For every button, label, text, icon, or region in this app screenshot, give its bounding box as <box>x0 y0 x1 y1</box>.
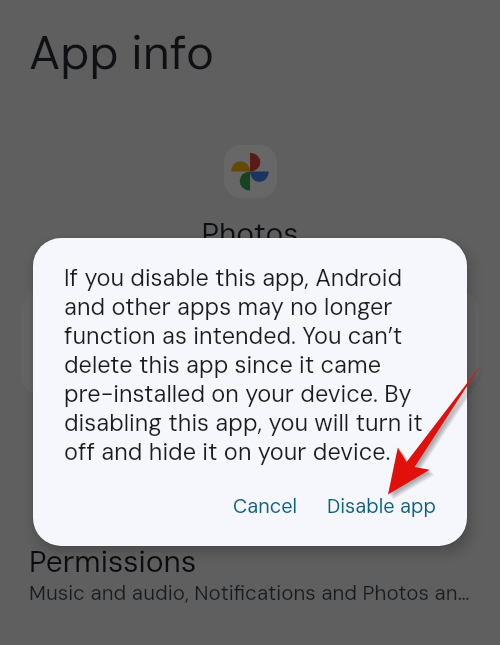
staticText: App info <box>29 22 214 83</box>
staticText: Cancel <box>233 493 298 519</box>
button[interactable]: Permissions <box>0 538 500 613</box>
staticText: Music and audio, Notifications and Photo… <box>29 580 470 607</box>
staticText: If you disable this app, Android and oth… <box>64 263 423 467</box>
button[interactable]: Disable app <box>315 483 448 529</box>
button[interactable]: Cancel <box>221 483 310 529</box>
staticText: Disable app <box>327 493 436 519</box>
staticText: Permissions <box>29 542 197 581</box>
staticText: Photos <box>0 214 500 253</box>
